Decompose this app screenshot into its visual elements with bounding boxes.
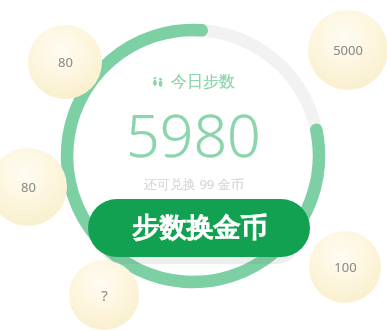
staticText: 还可兑换 99 金币 [144, 175, 244, 193]
staticText: 今日步数 [171, 72, 235, 92]
button[interactable]: 100 [309, 231, 381, 303]
staticText: 5980 [126, 94, 261, 174]
staticText: 步数换金币 [132, 211, 267, 245]
button[interactable]: 80 [0, 148, 67, 226]
button[interactable]: 80 [28, 25, 102, 99]
staticText: 80 [58, 53, 73, 71]
staticText: ? [101, 285, 108, 305]
staticText: 80 [21, 178, 36, 196]
button[interactable]: 5000 [308, 10, 387, 90]
button[interactable]: 步数换金币 [88, 199, 310, 257]
staticText: 5000 [333, 41, 363, 59]
button[interactable]: ? [69, 260, 139, 330]
staticText: 100 [334, 258, 357, 276]
